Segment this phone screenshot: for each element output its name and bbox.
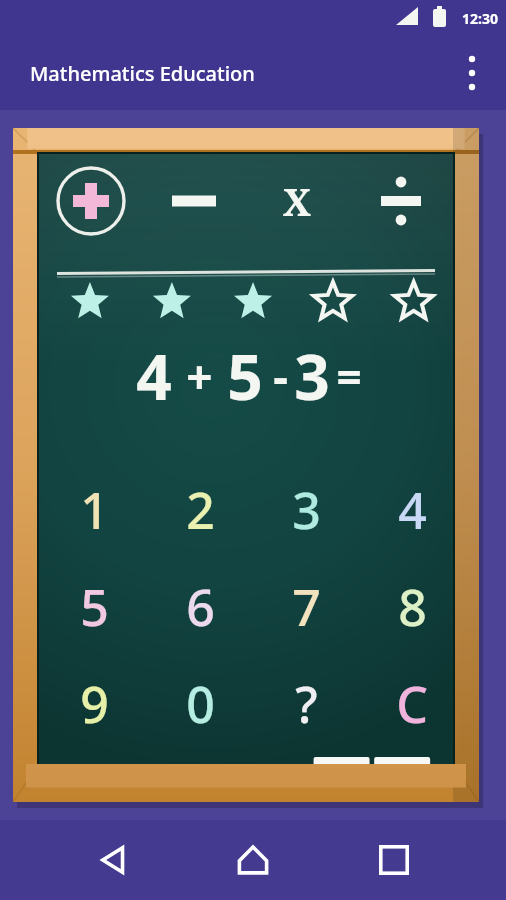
staticText: 5 — [80, 573, 109, 641]
staticText: - — [273, 345, 288, 408]
button[interactable]: Home — [225, 832, 281, 888]
staticText: 3 — [292, 476, 321, 544]
button[interactable]: More options — [448, 49, 496, 97]
staticText: 3 — [294, 334, 330, 418]
button[interactable]: 6 — [147, 558, 253, 655]
button[interactable]: C — [359, 655, 465, 752]
button[interactable]: Addition — [39, 160, 142, 242]
staticText: + — [186, 345, 213, 408]
button[interactable]: ? — [253, 655, 359, 752]
button[interactable]: 9 — [41, 655, 147, 752]
button[interactable]: 3 — [253, 462, 359, 558]
button[interactable]: Subtraction — [142, 160, 245, 242]
staticText: 6 — [186, 573, 215, 641]
button[interactable]: 2 — [147, 462, 253, 558]
button[interactable]: Division — [349, 160, 453, 242]
staticText: 2 — [186, 476, 215, 544]
button[interactable]: 8 — [359, 558, 465, 655]
button[interactable]: 1 — [41, 462, 147, 558]
staticText: 5 — [227, 334, 263, 418]
staticText: 12:30 — [462, 9, 498, 28]
staticText: 8 — [398, 573, 427, 641]
staticText: X — [283, 175, 311, 227]
button[interactable]: 7 — [253, 558, 359, 655]
button[interactable]: 5 — [41, 558, 147, 655]
staticText: 0 — [186, 670, 215, 738]
staticText: Mathematics Education — [30, 60, 255, 87]
staticText: 4 — [136, 334, 172, 418]
staticText: 9 — [80, 670, 109, 738]
button[interactable]: Back — [85, 832, 141, 888]
button[interactable]: Multiplication — [245, 160, 349, 242]
staticText: = — [336, 346, 362, 406]
staticText: ? — [295, 670, 318, 738]
staticText: C — [396, 670, 428, 738]
staticText: 1 — [80, 476, 109, 544]
button[interactable]: 0 — [147, 655, 253, 752]
staticText: 4 — [398, 476, 427, 544]
button[interactable]: Recent apps — [366, 832, 422, 888]
staticText: 7 — [292, 573, 321, 641]
button[interactable]: 4 — [359, 462, 465, 558]
